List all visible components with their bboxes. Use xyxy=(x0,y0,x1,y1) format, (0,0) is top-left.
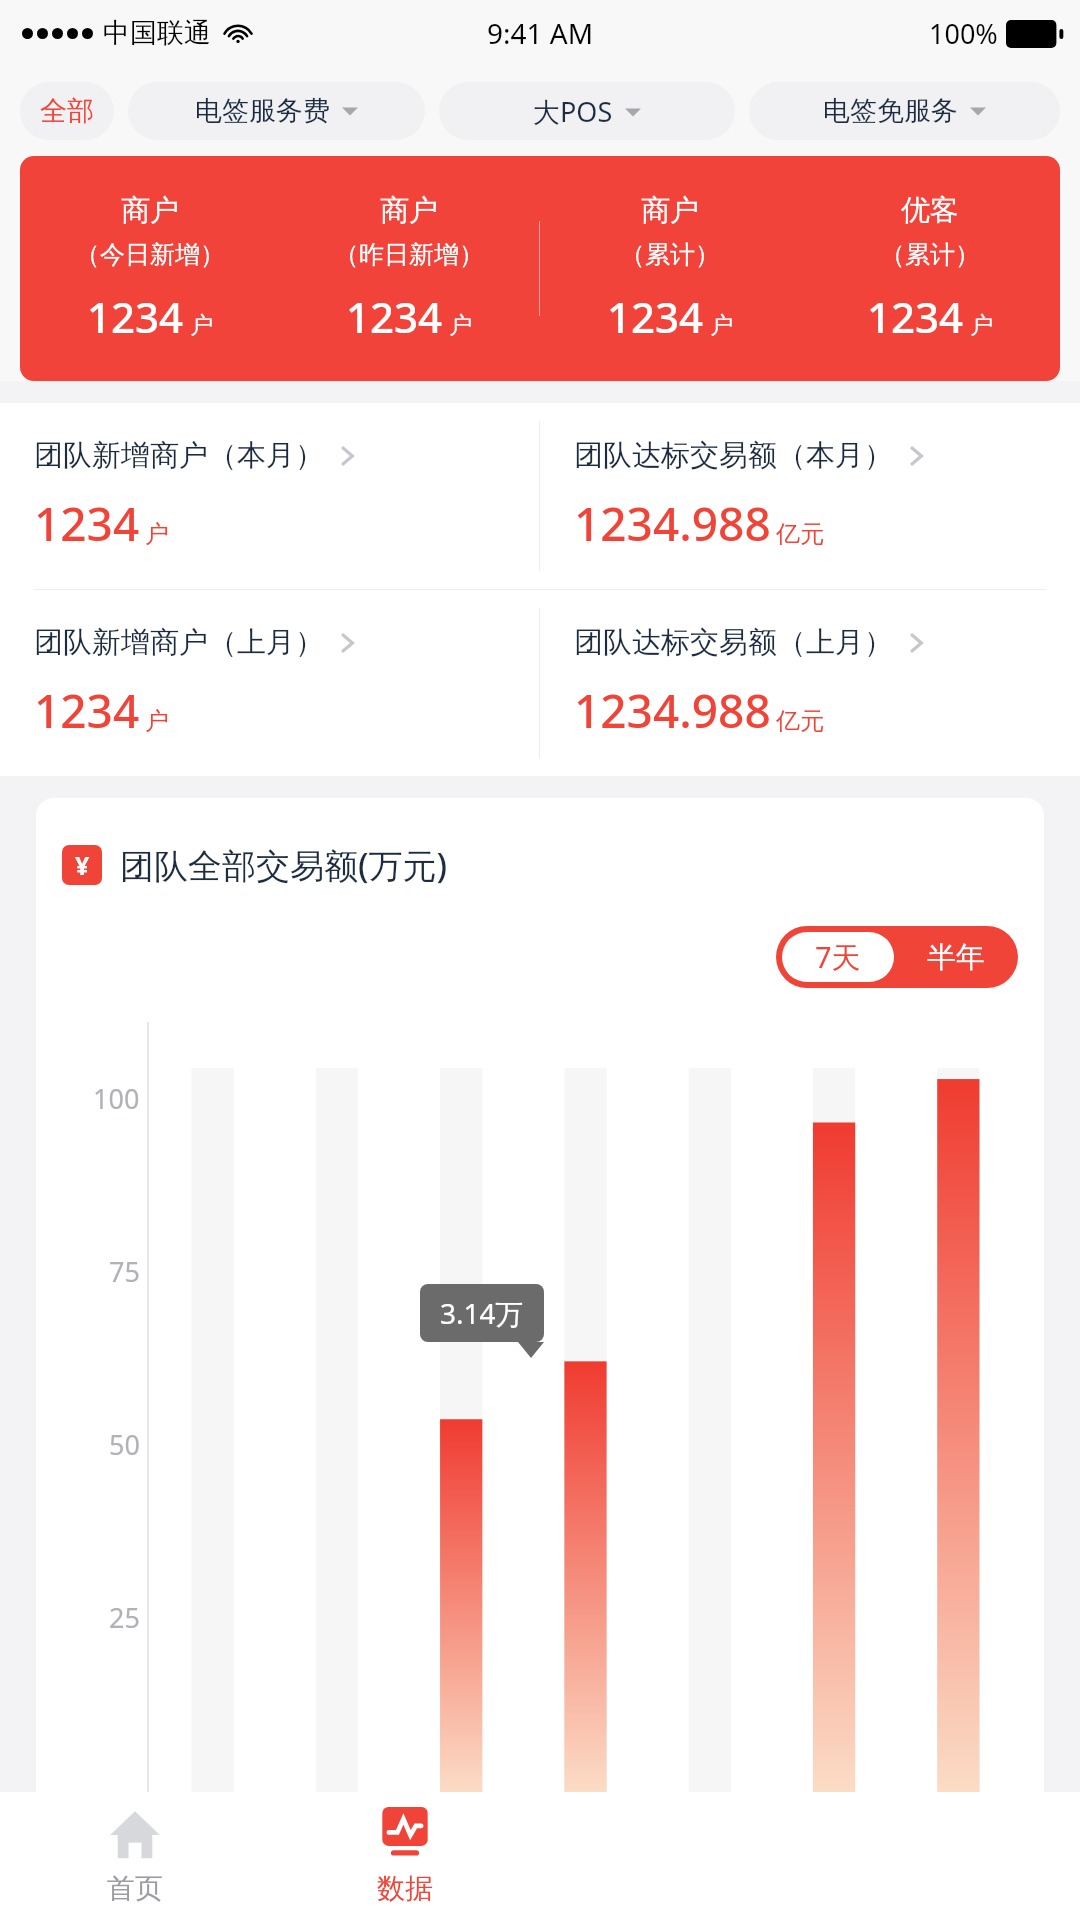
staticText: 团队达标交易额（本月） xyxy=(574,437,893,474)
button[interactable]: 7天 xyxy=(776,926,1018,988)
staticText: （昨日新增） xyxy=(334,239,484,270)
button[interactable]: 团队达标交易额（本月） xyxy=(540,403,1080,589)
button[interactable]: 优客 xyxy=(800,192,1060,345)
button[interactable]: 全部 xyxy=(20,82,114,140)
staticText: 半年 xyxy=(927,939,985,976)
staticText: 户 xyxy=(190,311,213,340)
button[interactable]: 商户 xyxy=(279,192,539,345)
staticText: 75 xyxy=(109,1253,140,1290)
staticText: 1234.988 xyxy=(574,679,771,742)
staticText: 大POS xyxy=(533,93,613,130)
staticText: 100% xyxy=(929,15,998,52)
staticText: 1234 xyxy=(87,288,184,345)
staticText: 1234 xyxy=(867,288,964,345)
staticText: 数据 xyxy=(377,1871,433,1906)
staticText: 电签服务费 xyxy=(195,94,330,128)
staticText: 户 xyxy=(970,311,993,340)
button[interactable]: 大POS xyxy=(439,82,735,140)
button[interactable]: 数据 xyxy=(270,1792,540,1920)
button[interactable]: 团队新增商户（上月） xyxy=(0,590,539,776)
staticText: 首页 xyxy=(107,1871,163,1906)
staticText: 户 xyxy=(145,706,169,736)
button[interactable]: 商户 xyxy=(20,192,279,345)
button[interactable]: 7天 xyxy=(782,932,894,982)
staticText: 3.14万 xyxy=(440,1294,524,1332)
button[interactable]: 团队新增商户（本月） xyxy=(0,403,539,589)
staticText: 商户 xyxy=(121,192,179,229)
staticText: 电签免服务 xyxy=(823,94,958,128)
staticText: 户 xyxy=(449,311,472,340)
staticText: 全部 xyxy=(40,94,94,128)
staticText: 1234 xyxy=(346,288,443,345)
staticText: 团队达标交易额（上月） xyxy=(574,624,893,661)
staticText: 1234.988 xyxy=(574,492,771,555)
staticText: 商户 xyxy=(380,192,438,229)
button[interactable]: 首页 xyxy=(0,1792,270,1920)
staticText: （累计） xyxy=(880,239,980,270)
staticText: 亿元 xyxy=(776,706,824,736)
staticText: 商户 xyxy=(641,192,699,229)
staticText: （累计） xyxy=(620,239,720,270)
button[interactable]: 电签免服务 xyxy=(749,82,1060,140)
staticText: 50 xyxy=(109,1426,140,1463)
other: 首页 xyxy=(108,1807,162,1861)
staticText: 1234 xyxy=(607,288,704,345)
staticText: 100 xyxy=(93,1080,140,1117)
staticText: ¥ xyxy=(75,848,90,882)
staticText: （今日新增） xyxy=(75,239,225,270)
staticText: 7天 xyxy=(815,937,861,977)
staticText: 25 xyxy=(109,1599,140,1636)
staticText: 1234 xyxy=(34,492,140,555)
button[interactable]: 商户 xyxy=(540,192,800,345)
staticText: 户 xyxy=(710,311,733,340)
staticText: 户 xyxy=(145,519,169,549)
staticText: 1234 xyxy=(34,679,140,742)
staticText: 团队新增商户（上月） xyxy=(34,624,324,661)
staticText: 亿元 xyxy=(776,519,824,549)
staticText: 中国联通 xyxy=(103,16,211,50)
other: 数据 xyxy=(378,1807,432,1861)
staticText: 9:41 AM xyxy=(487,14,594,52)
staticText: 团队新增商户（本月） xyxy=(34,437,324,474)
staticText: 优客 xyxy=(901,192,959,229)
staticText: 团队全部交易额(万元) xyxy=(120,842,448,888)
button[interactable]: 电签服务费 xyxy=(128,82,425,140)
button[interactable]: 团队达标交易额（上月） xyxy=(540,590,1080,776)
